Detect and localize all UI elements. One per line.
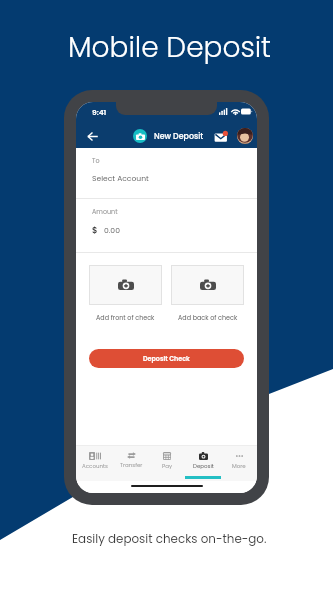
staticText: New Deposit [154, 131, 204, 142]
button[interactable]: Messages [211, 127, 229, 145]
staticText: Deposit [193, 462, 214, 470]
staticText: Select Account [92, 173, 149, 184]
button[interactable]: Transfer [113, 446, 149, 481]
button[interactable]: Deposit [185, 446, 221, 481]
staticText: Pay [162, 462, 172, 470]
button[interactable]: Add back of check [171, 265, 244, 322]
staticText: Amount [92, 207, 118, 216]
button[interactable]: Profile [237, 128, 253, 144]
staticText: Accounts [82, 462, 108, 470]
staticText: Easily deposit checks on-the-go. [72, 531, 267, 548]
staticText: 0.00 [104, 225, 120, 236]
staticText: Add back of check [178, 313, 238, 322]
button[interactable]: More [221, 446, 257, 481]
button[interactable]: Amount [76, 199, 257, 253]
button[interactable]: To [76, 148, 257, 199]
staticText: To [92, 156, 100, 165]
button[interactable]: Pay [149, 446, 185, 481]
staticText: 9:41 [92, 107, 107, 117]
button[interactable]: Accounts [76, 446, 113, 481]
staticText: Mobile Deposit [68, 28, 272, 67]
staticText: Deposit Check [143, 354, 190, 363]
staticText: Add front of check [96, 313, 155, 322]
staticText: $ [92, 224, 98, 236]
button[interactable]: Add front of check [89, 265, 162, 322]
button[interactable]: New Deposit [133, 129, 204, 143]
button[interactable]: Deposit Check [89, 349, 244, 368]
staticText: Transfer [120, 461, 143, 469]
staticText: More [232, 462, 246, 470]
button[interactable]: Back [82, 126, 102, 146]
